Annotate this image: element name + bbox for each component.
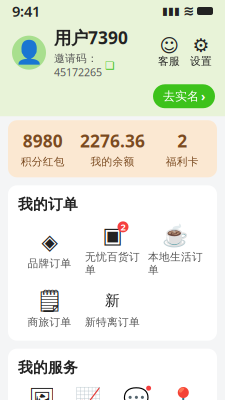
staticText: 品牌订单	[27, 257, 71, 270]
staticText: 我的余额	[90, 155, 134, 168]
staticText: 用户7390	[54, 26, 128, 49]
button[interactable]: ◈	[18, 228, 81, 272]
staticText: 去实名	[163, 89, 199, 104]
staticText: 2	[177, 129, 187, 152]
staticText: 9:41	[12, 1, 40, 21]
button[interactable]: 复制邀请码	[105, 61, 115, 71]
staticText: ›	[201, 88, 205, 104]
button[interactable]: 🗒	[18, 287, 81, 331]
staticText: 2276.36	[80, 129, 145, 152]
staticText: 🖼	[28, 386, 55, 400]
staticText: ☕	[162, 223, 189, 248]
staticText: ◈	[41, 230, 57, 254]
staticText: 客服	[158, 55, 180, 68]
staticText: 积分红包	[21, 155, 65, 168]
staticText: 🗒	[36, 288, 63, 313]
staticText: 本地生活订单	[148, 250, 203, 277]
staticText: 2	[120, 221, 125, 233]
button[interactable]: ⚙	[189, 38, 213, 68]
button[interactable]: 📈	[65, 385, 112, 400]
staticText: ▣	[102, 223, 122, 247]
button[interactable]: ☺	[157, 38, 181, 68]
staticText: ≋	[183, 3, 194, 18]
button[interactable]: 去实名	[153, 84, 215, 108]
staticText: 📍	[170, 386, 197, 400]
button[interactable]: ☕	[144, 221, 207, 279]
staticText: 邀请码：45172265	[54, 52, 102, 79]
staticText: 我的服务	[18, 359, 78, 377]
button[interactable]: ▣	[81, 221, 144, 279]
staticText: 福利卡	[166, 155, 199, 168]
staticText: ❏	[105, 60, 115, 72]
staticText: 📈	[75, 386, 102, 400]
staticText: 商旅订单	[27, 316, 71, 329]
button[interactable]: 新	[81, 287, 144, 331]
staticText: 无忧百货订单	[85, 250, 140, 277]
staticText: 设置	[190, 55, 212, 68]
staticText: 新特离订单	[85, 316, 140, 329]
staticText: ⚙	[192, 35, 209, 56]
staticText: 👤	[15, 40, 43, 66]
staticText: 我的订单	[18, 195, 78, 213]
staticText: ▮▮▮	[162, 5, 180, 17]
button[interactable]: 💬	[112, 385, 160, 400]
staticText: ☺	[159, 35, 178, 56]
button[interactable]: 🖼	[18, 385, 65, 400]
staticText: 新	[105, 292, 120, 310]
button[interactable]: 📍	[160, 385, 207, 400]
staticText: 8980	[23, 129, 63, 152]
staticText: 💬	[123, 386, 150, 400]
